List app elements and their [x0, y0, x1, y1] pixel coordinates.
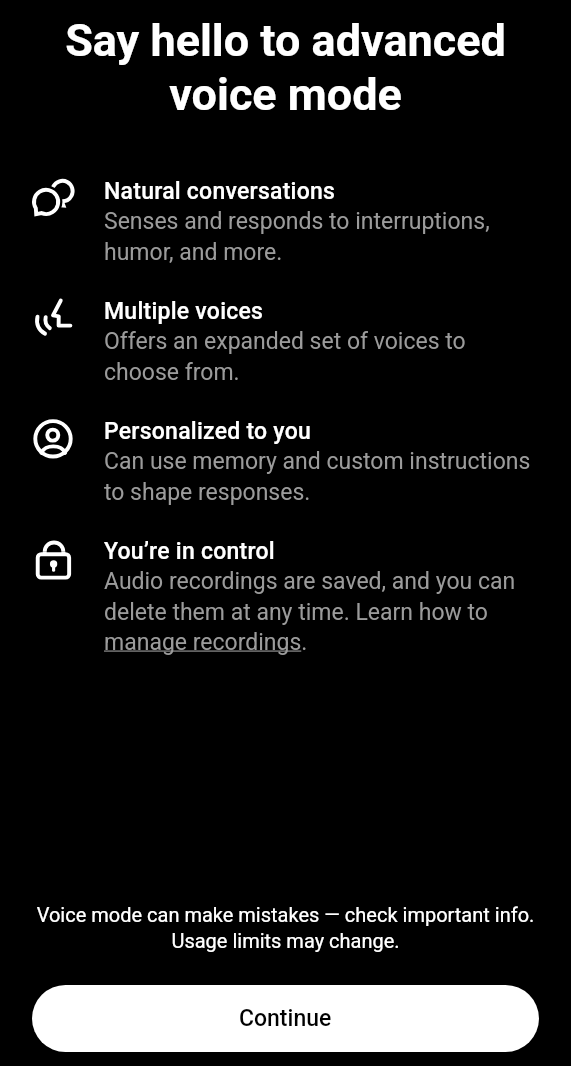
staticText: Multiple voices — [104, 298, 264, 325]
other: You're in control — [30, 538, 76, 584]
staticText: Audio recordings are saved, and you can … — [104, 568, 544, 655]
other: Natural conversations — [30, 178, 76, 224]
staticText: Say hello to advanced voice mode — [40, 14, 531, 121]
button[interactable]: Continue — [32, 985, 539, 1052]
other: Multiple voices — [30, 298, 76, 344]
button[interactable]: manage recordings — [104, 627, 303, 655]
staticText: Offers an expanded set of voices to choo… — [104, 328, 544, 385]
other: Personalized to you — [30, 418, 76, 464]
staticText: Natural conversations — [104, 178, 336, 205]
staticText: Personalized to you — [104, 418, 312, 445]
staticText: Continue — [239, 1005, 332, 1032]
staticText: You’re in control — [104, 538, 275, 565]
staticText: Can use memory and custom instructions t… — [104, 448, 544, 505]
staticText: Voice mode can make mistakes — check imp… — [16, 903, 555, 952]
staticText: Senses and responds to interruptions, hu… — [104, 208, 544, 265]
